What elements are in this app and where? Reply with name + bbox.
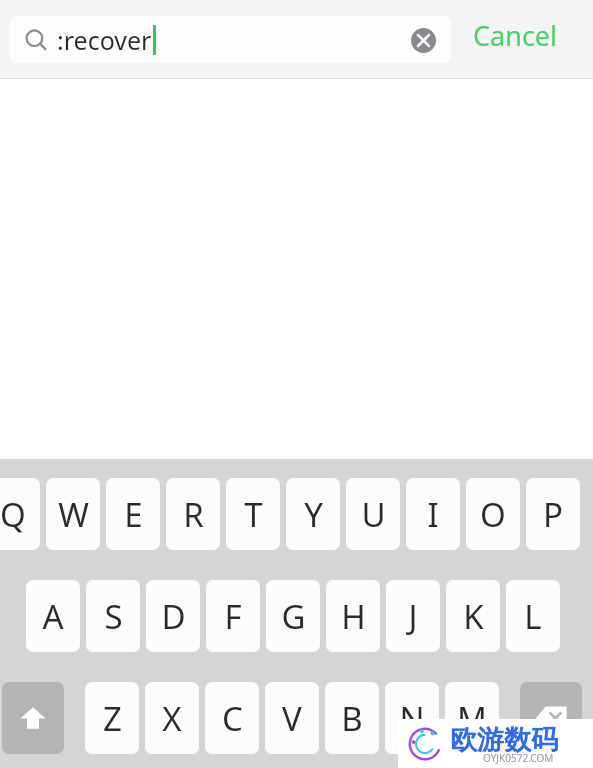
staticText: N [399,696,425,741]
button[interactable]: Cancel [473,17,558,54]
button[interactable]: J [386,580,440,652]
button[interactable]: S [86,580,140,652]
staticText: OYJK0572.COM [483,751,554,765]
staticText: A [42,594,64,639]
staticText: Q [0,492,26,537]
staticText: C [222,696,243,741]
staticText: E [124,492,143,537]
staticText: V [282,696,302,741]
staticText: B [341,696,363,741]
staticText: Z [103,696,122,741]
staticText: I [427,492,439,537]
button[interactable]: D [146,580,200,652]
button[interactable]: Y [286,478,340,550]
staticText: G [281,594,306,639]
button[interactable]: C [205,682,259,754]
staticText: K [463,594,484,639]
staticText: T [244,492,263,537]
button[interactable]: X [145,682,199,754]
staticText: R [183,492,204,537]
button[interactable]: R [166,478,220,550]
button[interactable]: U [346,478,400,550]
button[interactable]: L [506,580,560,652]
staticText: D [161,594,186,639]
staticText: :recover [57,23,152,57]
staticText: O [480,492,506,537]
staticText: S [104,594,123,639]
button[interactable]: N [385,682,439,754]
staticText: M [457,696,487,741]
button[interactable]: Clear text [407,24,439,56]
button[interactable]: :recover [10,16,451,63]
button[interactable]: B [325,682,379,754]
button[interactable]: Backspace [520,682,582,754]
staticText: W [58,492,89,537]
button[interactable]: H [326,580,380,652]
staticText: L [524,594,542,639]
staticText: Y [304,492,323,537]
button[interactable]: F [206,580,260,652]
staticText: Cancel [473,17,558,54]
staticText: P [543,492,563,537]
staticText: U [361,492,386,537]
button[interactable]: I [406,478,460,550]
staticText: 欧游数码 [450,723,558,757]
staticText: J [408,594,418,639]
button[interactable]: W [46,478,100,550]
button[interactable]: Q [0,478,40,550]
button[interactable]: K [446,580,500,652]
button[interactable]: A [26,580,80,652]
button[interactable]: T [226,478,280,550]
button[interactable]: E [106,478,160,550]
button[interactable]: M [445,682,499,754]
button[interactable]: Z [85,682,139,754]
staticText: F [224,594,242,639]
button[interactable]: G [266,580,320,652]
button[interactable]: O [466,478,520,550]
staticText: H [341,594,366,639]
button[interactable]: P [526,478,580,550]
button[interactable]: Shift [2,682,64,754]
staticText: X [162,696,182,741]
button[interactable]: V [265,682,319,754]
